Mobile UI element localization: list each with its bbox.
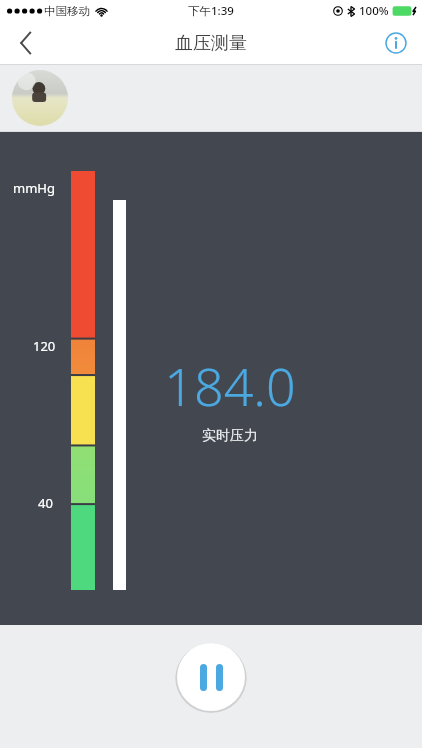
staticText: 40 [38,494,53,512]
staticText: 下午1:39 [188,3,234,19]
button[interactable]: Pause [175,641,247,713]
button[interactable]: Device [12,70,68,126]
staticText: 血压测量 [175,32,247,55]
staticText: 100% [359,3,389,19]
staticText: 实时压力 [202,427,258,445]
staticText: mmHg [13,179,55,197]
staticText: 中国移动 [44,4,90,18]
button[interactable]: Back [0,22,52,64]
staticText: 120 [33,337,56,355]
staticText: 184.0 [164,350,296,421]
button[interactable]: Info [370,22,422,64]
